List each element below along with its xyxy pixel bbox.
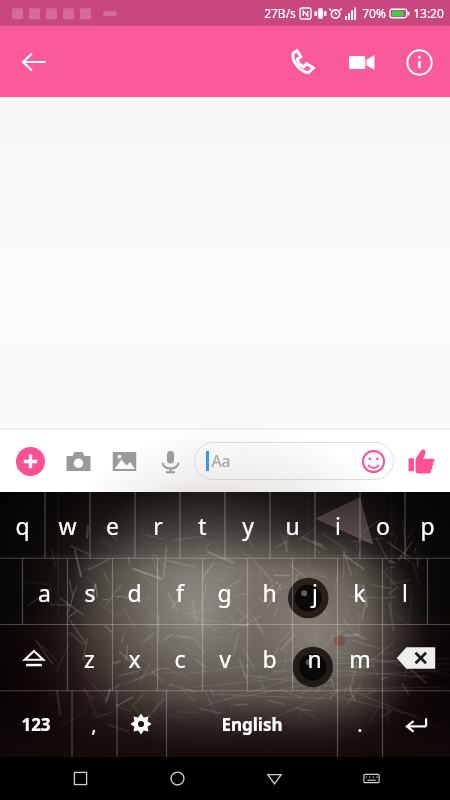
button[interactable]: j bbox=[292, 559, 337, 625]
button[interactable]: Aa bbox=[194, 442, 394, 480]
button[interactable]: o bbox=[360, 492, 405, 559]
button[interactable]: Back bbox=[10, 38, 58, 86]
button[interactable]: h bbox=[247, 559, 292, 625]
staticText: , bbox=[91, 711, 97, 738]
staticText: h bbox=[262, 577, 277, 608]
button[interactable]: Back bbox=[251, 757, 297, 800]
staticText: a bbox=[38, 577, 51, 608]
button[interactable]: Info bbox=[396, 39, 442, 85]
button[interactable]: Home bbox=[154, 757, 200, 800]
staticText: x bbox=[128, 643, 141, 674]
button[interactable]: English bbox=[166, 691, 337, 757]
staticText: n bbox=[307, 643, 322, 674]
staticText: Aa bbox=[211, 450, 231, 472]
button[interactable]: Shift bbox=[0, 625, 67, 691]
button[interactable]: Emoji bbox=[360, 448, 386, 474]
button[interactable]: z bbox=[67, 625, 112, 691]
button[interactable]: p bbox=[405, 492, 450, 559]
button[interactable]: Hide keyboard bbox=[348, 757, 394, 800]
button[interactable]: , bbox=[71, 691, 116, 757]
staticText: d bbox=[127, 577, 142, 608]
button[interactable]: Video call bbox=[338, 39, 384, 85]
staticText: l bbox=[402, 577, 408, 608]
button[interactable]: Send like bbox=[400, 440, 442, 482]
staticText: 70% bbox=[362, 5, 386, 21]
button[interactable]: d bbox=[112, 559, 157, 625]
staticText: g bbox=[217, 577, 232, 608]
button[interactable]: Backspace bbox=[382, 625, 450, 691]
staticText: r bbox=[153, 510, 163, 541]
button[interactable]: q bbox=[0, 492, 45, 559]
button[interactable]: a bbox=[22, 559, 67, 625]
staticText: u bbox=[285, 510, 300, 541]
button[interactable]: Voice message bbox=[150, 441, 190, 481]
button[interactable]: Gallery bbox=[104, 441, 144, 481]
staticText: m bbox=[349, 643, 371, 674]
button[interactable]: g bbox=[202, 559, 247, 625]
button[interactable]: Camera bbox=[58, 441, 98, 481]
button[interactable]: n bbox=[292, 625, 337, 691]
staticText: p bbox=[420, 510, 435, 541]
button[interactable]: Keyboard settings bbox=[116, 691, 166, 757]
staticText: o bbox=[376, 510, 390, 541]
staticText: w bbox=[58, 510, 77, 541]
staticText: t bbox=[198, 510, 207, 541]
staticText: c bbox=[174, 643, 186, 674]
button[interactable]: t bbox=[180, 492, 225, 559]
button[interactable]: s bbox=[67, 559, 112, 625]
button[interactable]: w bbox=[45, 492, 90, 559]
button[interactable]: c bbox=[157, 625, 202, 691]
staticText: 27B/s bbox=[264, 5, 296, 21]
staticText: s bbox=[84, 577, 96, 608]
staticText: k bbox=[353, 577, 366, 608]
button[interactable]: b bbox=[247, 625, 292, 691]
button[interactable]: y bbox=[225, 492, 270, 559]
staticText: z bbox=[84, 643, 95, 674]
staticText: f bbox=[176, 577, 184, 608]
staticText: e bbox=[106, 510, 119, 541]
button[interactable]: k bbox=[337, 559, 382, 625]
staticText: v bbox=[219, 643, 231, 674]
button[interactable]: . bbox=[337, 691, 382, 757]
button[interactable]: m bbox=[337, 625, 382, 691]
button[interactable]: 123 bbox=[0, 691, 71, 757]
button[interactable]: f bbox=[157, 559, 202, 625]
button[interactable]: r bbox=[135, 492, 180, 559]
staticText: j bbox=[312, 577, 318, 608]
staticText: i bbox=[335, 510, 341, 541]
button[interactable]: e bbox=[90, 492, 135, 559]
staticText: y bbox=[242, 510, 254, 541]
staticText: 13:20 bbox=[413, 5, 444, 21]
staticText: English bbox=[221, 713, 283, 736]
button[interactable]: u bbox=[270, 492, 315, 559]
button[interactable]: More actions bbox=[8, 439, 52, 483]
button[interactable]: l bbox=[382, 559, 427, 625]
button[interactable]: i bbox=[315, 492, 360, 559]
staticText: . bbox=[357, 711, 363, 738]
staticText: b bbox=[262, 643, 277, 674]
staticText: q bbox=[15, 510, 30, 541]
button[interactable]: v bbox=[202, 625, 247, 691]
button[interactable]: x bbox=[112, 625, 157, 691]
button[interactable]: Enter bbox=[382, 691, 450, 757]
staticText: 123 bbox=[21, 713, 51, 736]
button[interactable]: Call bbox=[280, 39, 326, 85]
button[interactable]: Recent apps bbox=[57, 757, 103, 800]
